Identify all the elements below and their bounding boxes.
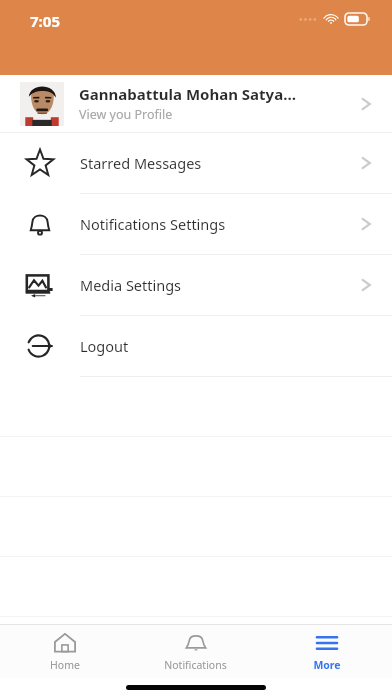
staticText: Notifications	[164, 658, 227, 672]
button[interactable]: Notifications Settings	[0, 194, 392, 254]
staticText: Starred Messages	[80, 153, 361, 173]
staticText: Home	[50, 658, 80, 672]
button[interactable]: Home	[0, 625, 130, 678]
button[interactable]: Logout	[0, 316, 392, 376]
staticText: More	[313, 658, 341, 672]
staticText: Gannabattula Mohan Satya…	[79, 84, 296, 104]
other: Notifications	[184, 631, 208, 655]
staticText: View you Profile	[79, 106, 173, 123]
button[interactable]: Gannabattula Mohan Satya…	[0, 75, 392, 132]
button[interactable]: Notifications	[130, 625, 261, 678]
button[interactable]: Starred Messages	[0, 133, 392, 193]
other: Home	[53, 631, 77, 655]
button[interactable]: More	[261, 625, 392, 678]
other: More	[315, 631, 339, 655]
staticText: Notifications Settings	[80, 214, 361, 234]
staticText: Logout	[80, 336, 372, 356]
button[interactable]: Media Settings	[0, 255, 392, 315]
staticText: 7:05	[30, 11, 60, 31]
staticText: Media Settings	[80, 275, 361, 295]
